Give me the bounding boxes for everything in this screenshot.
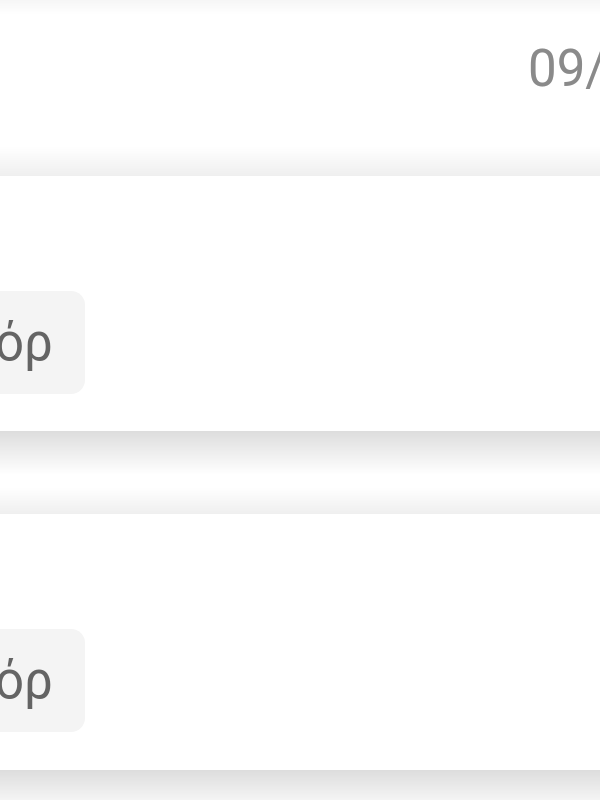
button[interactable]: όρ [0,514,600,770]
button[interactable]: όρ [0,176,600,431]
staticText: όρ [0,313,53,373]
button[interactable]: 09/05/2025 [0,0,600,176]
staticText: 09/05/2025 [528,39,600,99]
staticText: όρ [0,651,53,711]
button[interactable]: όρ [0,291,85,394]
button[interactable]: όρ [0,629,85,732]
